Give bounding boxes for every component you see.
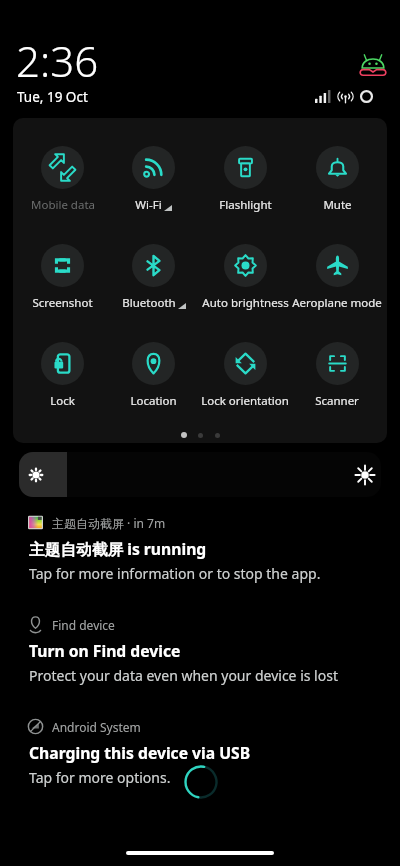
staticText: Tap for more options. [29, 768, 171, 787]
button[interactable]: Aeroplane mode [291, 244, 383, 311]
staticText: Location [130, 393, 177, 409]
button[interactable]: Android System [0, 718, 400, 802]
button[interactable]: Auto brightness [199, 244, 291, 311]
staticText: Lock [50, 393, 75, 409]
staticText: Find device [52, 617, 115, 633]
staticText: Tap for more information or to stop the … [29, 564, 321, 583]
button[interactable]: Flashlight [199, 146, 291, 213]
button[interactable]: Wi-Fi [108, 146, 199, 213]
staticText: Mute [323, 197, 352, 213]
staticText: Protect your data even when your device … [29, 666, 338, 685]
staticText: Turn on Find device [29, 640, 181, 661]
staticText: 主题自动截屏 is running [29, 538, 207, 559]
staticText: Android System [52, 719, 141, 735]
staticText: Mobile data [31, 197, 95, 213]
staticText: Wi-Fi [135, 197, 162, 213]
staticText: Flashlight [219, 197, 272, 213]
button[interactable]: Mobile data [17, 146, 108, 213]
button[interactable]: Mute [291, 146, 383, 213]
button[interactable]: Bluetooth [108, 244, 199, 311]
button[interactable]: Location [108, 342, 199, 409]
button[interactable]: Find device [0, 616, 400, 685]
button[interactable]: 主题自动截屏 · in 7m [0, 514, 400, 583]
button[interactable]: Lock orientation [199, 342, 291, 409]
staticText: Auto brightness [202, 295, 289, 311]
staticText: Charging this device via USB [29, 742, 251, 763]
staticText: Aeroplane mode [292, 295, 382, 311]
staticText: Bluetooth [122, 295, 176, 311]
staticText: Screenshot [32, 295, 93, 311]
button[interactable]: Scanner [291, 342, 383, 409]
staticText: Tue, 19 Oct [17, 88, 88, 106]
staticText: 2:36 [16, 32, 99, 89]
staticText: 主题自动截屏 · in 7m [52, 515, 166, 531]
button[interactable]: Lock [17, 342, 108, 409]
staticText: Lock orientation [201, 393, 289, 409]
button[interactable]: Brightness [19, 452, 381, 497]
button[interactable]: Screenshot [17, 244, 108, 311]
staticText: Scanner [315, 393, 359, 409]
